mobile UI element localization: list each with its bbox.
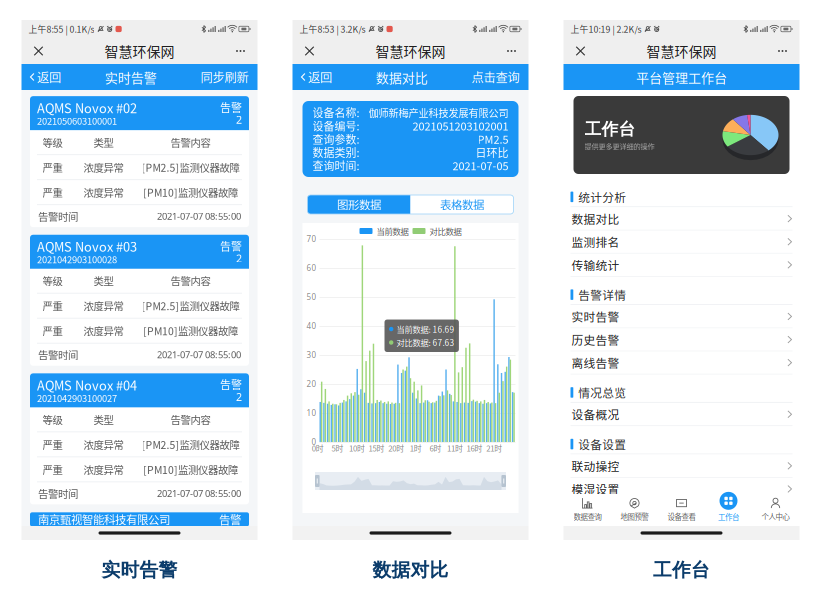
staticText: 对比数据 bbox=[429, 225, 461, 237]
staticText: 30 bbox=[306, 350, 316, 360]
button[interactable]: 传输统计 bbox=[563, 254, 799, 277]
button[interactable]: AQMS Novox #02 bbox=[30, 96, 249, 227]
staticText: 2 bbox=[236, 251, 242, 265]
button[interactable]: 表格数据 bbox=[410, 195, 513, 214]
staticText: 数据查询 bbox=[573, 511, 601, 522]
button[interactable]: 关闭 bbox=[26, 38, 50, 64]
staticText: 1时 bbox=[410, 442, 422, 454]
button[interactable]: 返回 bbox=[21, 64, 67, 90]
staticText: 2021-07-07 08:55:00 bbox=[157, 487, 241, 500]
staticText: 数据对比 bbox=[571, 210, 619, 227]
staticText: 平台管理工作台 bbox=[636, 67, 727, 86]
button[interactable]: 更多 bbox=[228, 38, 252, 64]
staticText: [PM2.5]监测仪器故障 bbox=[141, 437, 239, 452]
staticText: 告警内容 bbox=[170, 412, 210, 427]
staticText: 对比数据: 67.63 bbox=[396, 336, 454, 348]
staticText: PM2.5 bbox=[477, 131, 508, 147]
staticText: 40 bbox=[306, 321, 316, 331]
staticText: AQMS Novox #02 bbox=[37, 98, 137, 117]
staticText: 类型 bbox=[93, 135, 113, 150]
staticText: 告警 bbox=[220, 99, 242, 115]
button[interactable]: 实时告警 bbox=[563, 305, 799, 328]
button[interactable]: 设备概况 bbox=[563, 403, 799, 426]
staticText: 0时 bbox=[312, 442, 324, 454]
button[interactable]: 模湿设置 bbox=[563, 478, 799, 501]
button[interactable]: 监测排名 bbox=[563, 231, 799, 254]
staticText: 16时 bbox=[467, 442, 483, 454]
staticText: 严重 bbox=[42, 298, 62, 313]
staticText: 数据对比 bbox=[376, 67, 428, 86]
staticText: 2021042903100028 bbox=[37, 252, 117, 266]
button[interactable]: 地图预警 bbox=[611, 494, 658, 525]
button[interactable]: 个人中心 bbox=[752, 494, 799, 525]
staticText: 2021-07-07 08:55:00 bbox=[157, 349, 241, 361]
staticText: 设备查看 bbox=[667, 511, 695, 522]
staticText: AQMS Novox #03 bbox=[37, 237, 137, 255]
staticText: 图形数据 bbox=[337, 196, 381, 213]
button[interactable]: AQMS Novox #03 bbox=[30, 235, 249, 366]
staticText: AQMS Novox #04 bbox=[37, 376, 137, 394]
staticText: 智慧环保网 bbox=[104, 41, 174, 61]
staticText: [PM2.5]监测仪器故障 bbox=[141, 160, 239, 175]
staticText: 日环比 bbox=[475, 144, 508, 160]
button[interactable]: 关闭 bbox=[297, 38, 321, 64]
staticText: 浓度异常 bbox=[83, 323, 123, 338]
button[interactable]: 设备查看 bbox=[658, 494, 705, 525]
staticText: 告警 bbox=[220, 238, 242, 254]
staticText: 联动操控 bbox=[571, 457, 619, 474]
staticText: 上午8:55 | 0.1K/s bbox=[28, 23, 94, 35]
button[interactable]: 关闭 bbox=[568, 38, 592, 64]
button[interactable]: AQMS Novox #04 bbox=[30, 373, 249, 504]
button[interactable]: 南京甄视智能科技有限公司 bbox=[30, 512, 249, 526]
staticText: 当前数据: 16.69 bbox=[396, 323, 454, 335]
button[interactable]: 历史告警 bbox=[563, 328, 799, 351]
staticText: 告警时间 bbox=[38, 486, 78, 501]
staticText: 2021042903100027 bbox=[37, 391, 117, 405]
button[interactable]: 更多 bbox=[770, 38, 794, 64]
staticText: 类型 bbox=[93, 273, 113, 288]
button[interactable]: 图形数据 bbox=[307, 195, 410, 214]
staticText: 实时告警 bbox=[105, 67, 157, 86]
staticText: 等级 bbox=[42, 412, 62, 427]
staticText: 严重 bbox=[42, 323, 62, 338]
button[interactable]: 离线告警 bbox=[563, 351, 799, 375]
staticText: 工作台 bbox=[653, 558, 710, 582]
staticText: 历史告警 bbox=[571, 331, 619, 348]
staticText: 返回 bbox=[308, 68, 332, 86]
staticText: 返回 bbox=[37, 68, 61, 86]
staticText: 当前数据 bbox=[376, 225, 408, 237]
staticText: 浓度异常 bbox=[83, 462, 123, 477]
staticText: 类型 bbox=[93, 412, 113, 427]
staticText: 工作台 bbox=[584, 119, 635, 140]
staticText: 严重 bbox=[42, 160, 62, 175]
staticText: 50 bbox=[306, 292, 316, 302]
button[interactable]: 同步刷新 bbox=[194, 64, 257, 90]
staticText: 10时 bbox=[349, 442, 365, 454]
staticText: 智慧环保网 bbox=[646, 41, 716, 61]
staticText: 11时 bbox=[447, 442, 463, 454]
staticText: 上午8:53 | 3.2K/s bbox=[299, 23, 365, 35]
staticText: 告警内容 bbox=[170, 273, 210, 288]
staticText: 设备设置 bbox=[578, 436, 626, 453]
staticText: 点击查询 bbox=[471, 68, 519, 86]
button[interactable]: 工作台 bbox=[705, 494, 752, 525]
staticText: 15时 bbox=[369, 442, 385, 454]
button[interactable]: 数据查询 bbox=[564, 494, 611, 525]
staticText: 同步刷新 bbox=[200, 68, 248, 86]
staticText: 实时告警 bbox=[571, 308, 619, 325]
staticText: 情况总览 bbox=[578, 384, 626, 401]
staticText: 设备名称: bbox=[312, 105, 359, 120]
staticText: 告警时间 bbox=[38, 209, 78, 224]
staticText: 2021-07-07 08:55:00 bbox=[157, 210, 241, 222]
staticText: 数据类别: bbox=[312, 144, 359, 160]
staticText: 21时 bbox=[486, 442, 502, 454]
button[interactable]: 数据对比 bbox=[563, 207, 799, 231]
button[interactable]: 返回 bbox=[292, 64, 338, 90]
staticText: 传输统计 bbox=[571, 256, 619, 273]
button[interactable]: 更多 bbox=[499, 38, 523, 64]
button[interactable]: 点击查询 bbox=[465, 64, 528, 90]
staticText: 70 bbox=[306, 234, 316, 244]
button[interactable]: 联动操控 bbox=[563, 455, 799, 478]
staticText: 2021051203102001 bbox=[412, 118, 508, 134]
staticText: 告警内容 bbox=[170, 135, 210, 150]
